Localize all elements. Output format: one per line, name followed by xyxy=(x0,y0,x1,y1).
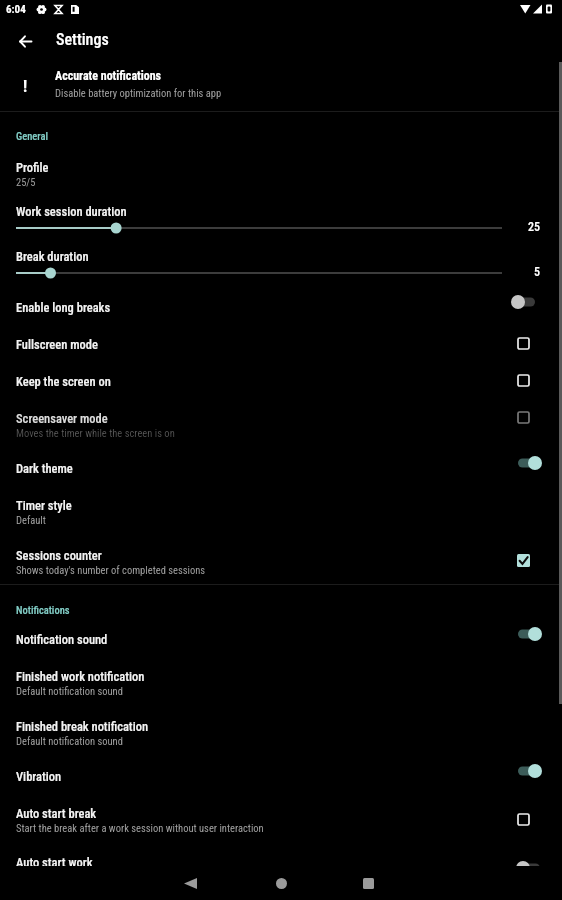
staticText: Finished break notification xyxy=(16,719,149,734)
staticText: Moves the timer while the screen is on xyxy=(16,427,175,439)
staticText: Sessions counter xyxy=(16,548,102,563)
staticText: Auto start break xyxy=(16,806,97,821)
button[interactable]: Toggle off xyxy=(509,289,543,315)
staticText: Auto start work xyxy=(16,855,93,870)
staticText: Start the break after a work session wit… xyxy=(16,822,264,834)
staticText: Enable long breaks xyxy=(16,300,111,315)
staticText: Default notification sound xyxy=(16,735,123,747)
button[interactable]: Finished work notification xyxy=(0,655,562,705)
staticText: Break duration xyxy=(16,249,89,264)
staticText: Notifications xyxy=(16,604,70,616)
button[interactable]: Fullscreen mode xyxy=(0,323,562,360)
button[interactable]: Dark theme xyxy=(0,447,562,484)
button[interactable]: Sessions counter xyxy=(0,534,562,584)
button[interactable]: Toggle on xyxy=(509,450,543,476)
staticText: Disable battery optimization for this ap… xyxy=(55,87,222,99)
button[interactable]: Auto start break xyxy=(0,792,562,841)
staticText: Profile xyxy=(16,160,49,175)
staticText: Default xyxy=(16,514,46,526)
button[interactable]: Break duration xyxy=(0,236,562,286)
staticText: ! xyxy=(23,77,28,96)
staticText: Screensaver mode xyxy=(16,411,108,426)
staticText: Vibration xyxy=(16,769,62,784)
staticText: Notification sound xyxy=(16,632,108,647)
button[interactable]: Back xyxy=(176,869,204,897)
staticText: 6:04 xyxy=(6,3,26,16)
button[interactable]: Checked xyxy=(510,547,536,573)
button[interactable]: Unchecked xyxy=(510,404,536,430)
staticText: Default notification sound xyxy=(16,685,123,697)
button[interactable]: Screensaver mode xyxy=(0,397,562,447)
button[interactable]: Work session duration xyxy=(0,191,562,236)
staticText: 5 xyxy=(534,265,540,279)
staticText: Settings xyxy=(56,30,109,49)
staticText: Fullscreen mode xyxy=(16,337,98,352)
staticText: 25/5 xyxy=(16,176,36,188)
button[interactable]: Toggle off xyxy=(514,858,548,878)
button[interactable]: Unchecked xyxy=(510,330,536,356)
button[interactable]: Toggle on xyxy=(509,758,543,784)
staticText: Finished work notification xyxy=(16,669,145,684)
staticText: Shows today's number of completed sessio… xyxy=(16,564,206,576)
staticText: General xyxy=(16,130,48,142)
button[interactable]: Unchecked xyxy=(510,806,536,832)
button[interactable]: ! xyxy=(0,57,562,111)
button[interactable]: Notification sound xyxy=(0,618,562,655)
button[interactable]: Finished break notification xyxy=(0,705,562,755)
staticText: Dark theme xyxy=(16,461,73,476)
button[interactable]: Recents xyxy=(354,869,382,897)
button[interactable]: Auto start work xyxy=(0,841,562,878)
button[interactable]: Keep the screen on xyxy=(0,360,562,397)
staticText: Work session duration xyxy=(16,204,127,219)
button[interactable]: Enable long breaks xyxy=(0,286,562,323)
button[interactable]: Toggle on xyxy=(509,621,543,647)
button[interactable]: Back xyxy=(11,27,39,55)
staticText: Accurate notifications xyxy=(55,69,162,83)
button[interactable]: Vibration xyxy=(0,755,562,792)
button[interactable]: Unchecked xyxy=(510,367,536,393)
button[interactable]: Home xyxy=(267,869,295,897)
button[interactable]: Profile xyxy=(0,147,562,191)
staticText: 25 xyxy=(528,220,540,234)
staticText: Timer style xyxy=(16,498,72,513)
staticText: Keep the screen on xyxy=(16,374,111,389)
button[interactable]: Timer style xyxy=(0,484,562,534)
